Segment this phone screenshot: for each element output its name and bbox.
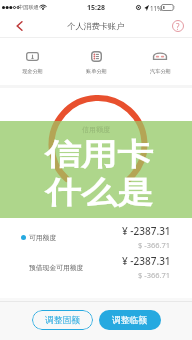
- staticText: $ -366.71: [138, 270, 171, 280]
- staticText: 汽车分期: [150, 68, 171, 75]
- button[interactable]: Back: [0, 15, 38, 37]
- staticText: 调整固额: [45, 315, 81, 326]
- staticText: 预借现金可用额度: [29, 263, 84, 272]
- button[interactable]: Help: [164, 15, 192, 37]
- staticText: 可用额度: [29, 233, 57, 242]
- button[interactable]: 调整临额: [99, 310, 161, 330]
- staticText: $ -366.71: [138, 240, 171, 250]
- button[interactable]: 账单分期: [64, 38, 128, 85]
- staticText: ?: [176, 21, 180, 32]
- staticText: 调整临额: [112, 315, 148, 326]
- staticText: 现金分期: [22, 68, 43, 75]
- staticText: 中国联通: [18, 4, 39, 11]
- staticText: 15:28: [87, 3, 105, 13]
- staticText: 个人消费卡账户: [67, 21, 125, 31]
- button[interactable]: 汽车分期: [128, 38, 192, 85]
- staticText: 账单分期: [86, 68, 107, 75]
- staticText: ¥ -2387.31: [122, 224, 171, 238]
- button[interactable]: 现金分期: [0, 38, 64, 85]
- staticText: 11%: [150, 4, 163, 12]
- staticText: ¥ -2387.31: [122, 254, 171, 268]
- button[interactable]: 调整固额: [32, 310, 93, 330]
- staticText: 信用额度: [0, 125, 192, 134]
- staticText: 信用卡 什么是: [3, 136, 192, 212]
